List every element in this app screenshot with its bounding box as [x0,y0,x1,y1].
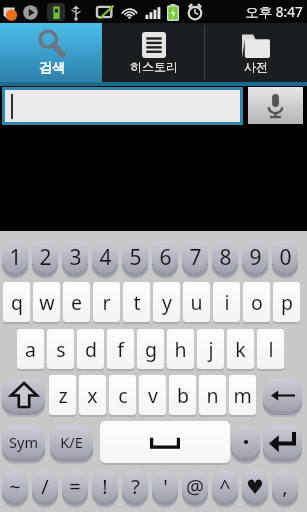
staticText: w [39,289,55,316]
button[interactable]: ! [92,470,118,502]
button[interactable]: ^ [212,470,238,502]
staticText: ' [163,473,168,500]
button[interactable]: n [199,375,226,415]
button[interactable]: 1 [2,241,28,273]
staticText: K/E [60,432,83,452]
staticText: q [11,289,23,316]
staticText: d [85,336,97,363]
staticText: 9 [249,243,262,272]
staticText: v [148,382,158,409]
button[interactable]: y [153,282,180,322]
button[interactable]: 검색 [0,23,102,82]
button[interactable]: 8 [212,241,238,273]
button[interactable]: Sym [2,426,45,458]
staticText: ! [102,473,108,500]
button[interactable]: l [257,329,284,369]
staticText: r [102,289,111,316]
staticText: e [71,289,82,316]
button[interactable]: @ [182,470,208,502]
staticText: i [224,289,230,316]
staticText: l [268,336,274,363]
staticText: 오후 8:47 [245,3,303,21]
button[interactable]: f [107,329,134,369]
staticText: k [235,336,246,363]
button[interactable]: 9 [242,241,268,273]
button[interactable]: / [32,470,58,502]
button[interactable]: ~ [2,470,28,502]
button[interactable]: m [229,375,256,415]
staticText: m [233,382,252,409]
button[interactable]: Voice search [248,87,303,124]
button[interactable]: 히스토리 [102,23,205,82]
staticText: ? [131,473,140,500]
staticText: 5 [129,243,142,272]
button[interactable]: e [63,282,90,322]
staticText: g [145,336,157,363]
staticText: ♥ [246,475,264,498]
button[interactable]: h [167,329,194,369]
button[interactable]: j [197,329,224,369]
button[interactable]: v [139,375,166,415]
button[interactable]: , [272,470,298,502]
button[interactable]: x [79,375,106,415]
button[interactable]: a [17,329,44,369]
staticText: / [41,473,49,500]
button[interactable]: 0 [272,241,298,273]
staticText: z [58,382,68,409]
staticText: 4 [99,243,112,272]
button[interactable]: K/E [50,426,93,458]
button[interactable]: Period [231,426,260,458]
button[interactable]: g [137,329,164,369]
staticText: 7 [189,243,202,272]
button[interactable]: t [123,282,150,322]
button[interactable]: u [183,282,210,322]
button[interactable]: 4 [92,241,118,273]
staticText: 0 [279,243,292,272]
button[interactable]: c [109,375,136,415]
staticText: o [251,289,263,316]
staticText: c [118,382,128,409]
button[interactable]: Backspace [263,379,302,411]
button[interactable]: ? [122,470,148,502]
staticText: s [56,336,66,363]
button[interactable]: o [243,282,270,322]
button[interactable]: r [93,282,120,322]
staticText: j [208,336,214,363]
button[interactable]: s [47,329,74,369]
staticText: y [162,289,172,316]
button[interactable]: q [3,282,30,322]
staticText: 8 [219,243,232,272]
staticText: 6 [159,243,172,272]
button[interactable]: 6 [152,241,178,273]
button[interactable]: Space [100,421,230,463]
staticText: h [174,336,187,363]
staticText: 검색 [39,59,65,75]
staticText: Sym [9,432,38,452]
button[interactable]: z [49,375,76,415]
button[interactable]: i [213,282,240,322]
button[interactable]: p [273,282,300,322]
staticText: 1 [9,243,22,272]
staticText: 히스토리 [130,59,178,74]
staticText: 2 [39,243,52,272]
button[interactable]: k [227,329,254,369]
button[interactable]: 사전 [205,23,307,82]
button[interactable]: ♥ [242,470,268,502]
button[interactable]: = [62,470,88,502]
button[interactable]: b [169,375,196,415]
button[interactable]: d [77,329,104,369]
button[interactable]: 2 [32,241,58,273]
button[interactable]: 3 [62,241,88,273]
staticText: p [281,289,293,316]
button[interactable]: 7 [182,241,208,273]
staticText: 3 [69,243,82,272]
staticText: @ [186,473,204,500]
button[interactable]: w [33,282,60,322]
button[interactable] [5,90,240,122]
staticText: b [177,382,189,409]
button[interactable]: ' [152,470,178,502]
button[interactable]: 5 [122,241,148,273]
button[interactable]: Enter [263,426,302,458]
staticText: u [190,289,203,316]
button[interactable]: Shift [2,379,45,411]
